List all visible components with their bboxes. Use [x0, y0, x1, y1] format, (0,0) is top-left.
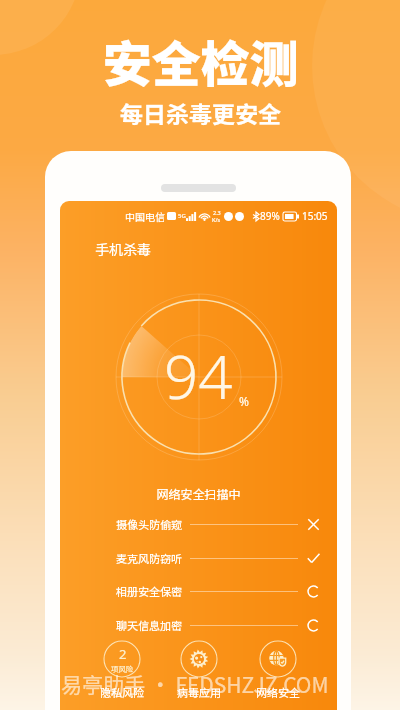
button[interactable]: 相册安全保密 [60, 581, 337, 601]
button[interactable]: 病毒应用 [167, 640, 231, 700]
button[interactable]: 2 [90, 640, 154, 700]
staticText: 网络安全扫描中 [60, 485, 337, 502]
button[interactable]: 聊天信息加密 [60, 615, 337, 635]
staticText: 病毒应用 [177, 684, 221, 700]
staticText: 易亭助手 · FEDSHZJZ.COM [61, 669, 329, 699]
staticText: K/s [212, 216, 221, 223]
staticText: 中国电信 [125, 209, 165, 223]
button[interactable]: 麦克风防窃听 [60, 548, 337, 568]
staticText: % [239, 393, 249, 409]
staticText: 5G [178, 212, 186, 220]
staticText: 麦克风防窃听 [116, 550, 182, 566]
button[interactable]: 摄像头防偷窥 [60, 514, 337, 534]
staticText: 项风险 [111, 663, 134, 674]
staticText: 89% [260, 209, 280, 223]
staticText: 安全检测 [102, 25, 299, 96]
staticText: 15:05 [302, 209, 328, 223]
staticText: 网络安全 [256, 684, 300, 700]
staticText: 隐私风险 [100, 684, 144, 700]
staticText: 摄像头防偷窥 [116, 516, 182, 532]
button[interactable]: 网络安全 [246, 640, 310, 700]
staticText: 聊天信息加密 [116, 617, 182, 633]
staticText: 2 [119, 645, 127, 663]
staticText: 2.3 [213, 209, 221, 216]
staticText: 94 [164, 335, 233, 417]
staticText: 相册安全保密 [116, 583, 182, 599]
button[interactable]: 手机杀毒 [95, 239, 151, 259]
staticText: 每日杀毒更安全 [120, 96, 281, 129]
